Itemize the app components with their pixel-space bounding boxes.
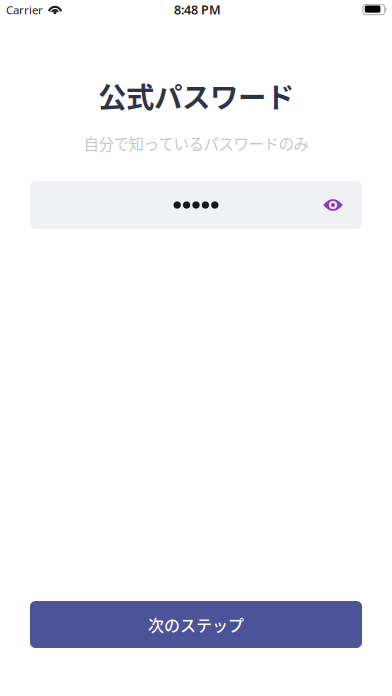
staticText: 次のステップ <box>148 613 244 636</box>
staticText: 8:48 PM <box>174 1 221 18</box>
staticText: 自分で知っているパスワードのみ <box>83 132 308 154</box>
button[interactable]: Show password <box>309 181 357 229</box>
button[interactable]: 次のステップ <box>30 601 362 648</box>
staticText: 公式パスワード <box>98 75 294 116</box>
staticText: Carrier <box>6 2 43 17</box>
